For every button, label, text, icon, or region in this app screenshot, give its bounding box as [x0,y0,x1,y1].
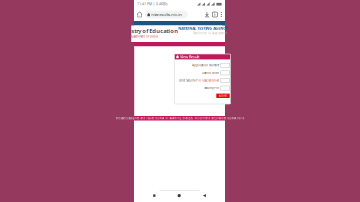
staticText: Enter Security [179,79,196,82]
staticText: Security Pin [204,86,219,90]
button[interactable]: Home [175,191,184,200]
button[interactable]: Back [200,191,209,200]
staticText: Submit [218,94,227,98]
staticText: stry of Education [131,27,178,35]
staticText: Government of India [131,35,157,38]
button[interactable]: Home [136,11,143,18]
button[interactable]: Tabs [211,11,218,18]
staticText: 5 [214,12,216,17]
staticText: ntaresults.nic.in [151,12,182,17]
button[interactable]: Recent apps [150,191,158,200]
staticText: The case is assigned and issued by NTA o… [115,116,243,120]
button[interactable]: Submit [216,94,230,98]
staticText: Pin (case sensitive) [196,79,219,82]
staticText: Application Number [192,64,219,67]
staticText: NATIONAL TESTING AGENCY [178,26,227,31]
staticText: View Result [180,54,200,59]
staticText: Date of Birth [202,71,219,75]
staticText: Excellence in Assessment [193,31,227,35]
button[interactable]: More options [220,11,223,18]
staticText: 11:41 PM | 0.4KB/s [137,2,168,6]
button[interactable]: Downloads [204,11,210,18]
